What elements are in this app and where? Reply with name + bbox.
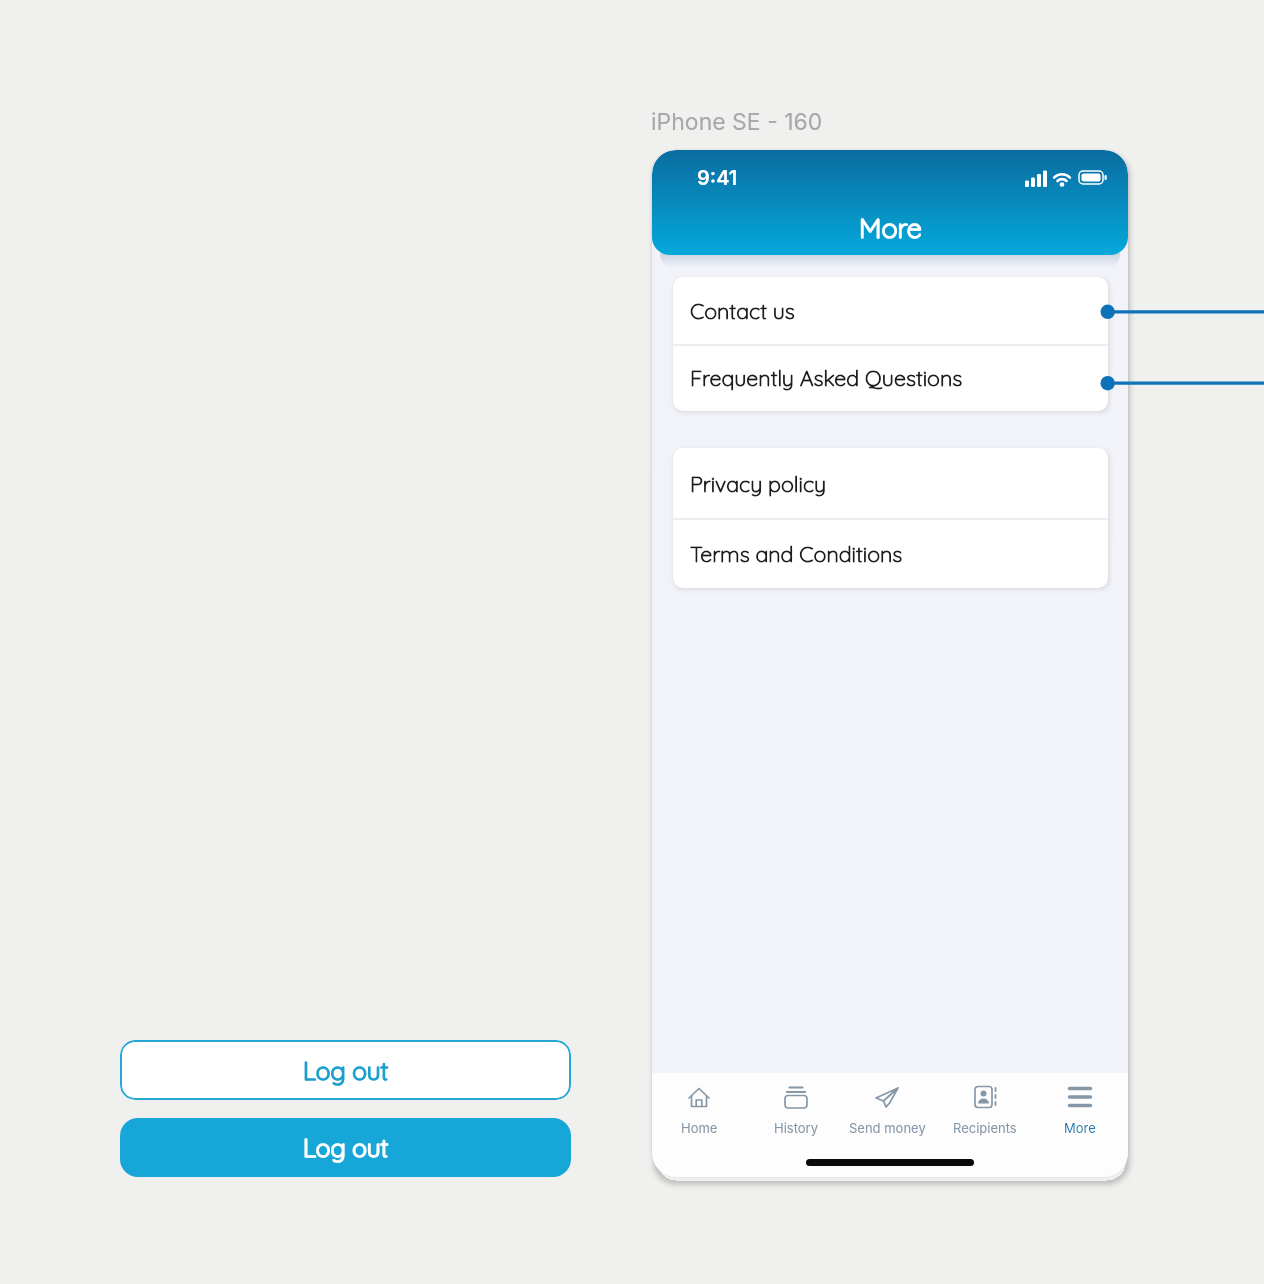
staticText: Terms and Conditions [690,540,903,567]
staticText: History [774,1120,818,1136]
staticText: Privacy policy [690,470,827,497]
staticText: Contact us [690,297,795,324]
staticText: Log out [303,1055,389,1086]
staticText: More [1064,1120,1096,1136]
staticText: Recipients [953,1120,1017,1136]
staticText: Home [681,1120,718,1136]
staticText: Frequently Asked Questions [690,364,963,391]
staticText: Send money [849,1120,926,1136]
staticText: Privacy policy [690,470,827,497]
staticText: Contact us [690,297,795,324]
staticText: Terms and Conditions [690,540,903,567]
staticText: iPhone SE - 160 [651,108,823,136]
staticText: Log out [303,1055,389,1086]
staticText: Log out [303,1132,389,1163]
staticText: More [859,211,922,245]
staticText: Frequently Asked Questions [690,364,963,391]
staticText: 9:41 [697,166,738,190]
staticText: More [859,211,922,245]
staticText: Log out [303,1132,389,1163]
